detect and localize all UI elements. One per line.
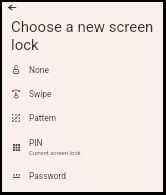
staticText: Swipe [29,89,52,99]
staticText: Pattern [29,113,57,123]
staticText: PIN [29,138,43,148]
button[interactable]: Pattern [2,106,163,130]
staticText: Current screen lock [29,149,81,156]
button[interactable]: Password [2,164,163,188]
button[interactable]: None [2,58,163,82]
staticText: None [29,65,49,75]
button[interactable]: Swipe [2,82,163,106]
button[interactable]: Back [0,0,24,19]
staticText: Choose a new screen lock [11,18,161,54]
staticText: Password [29,171,67,181]
button[interactable]: PIN [2,130,163,164]
